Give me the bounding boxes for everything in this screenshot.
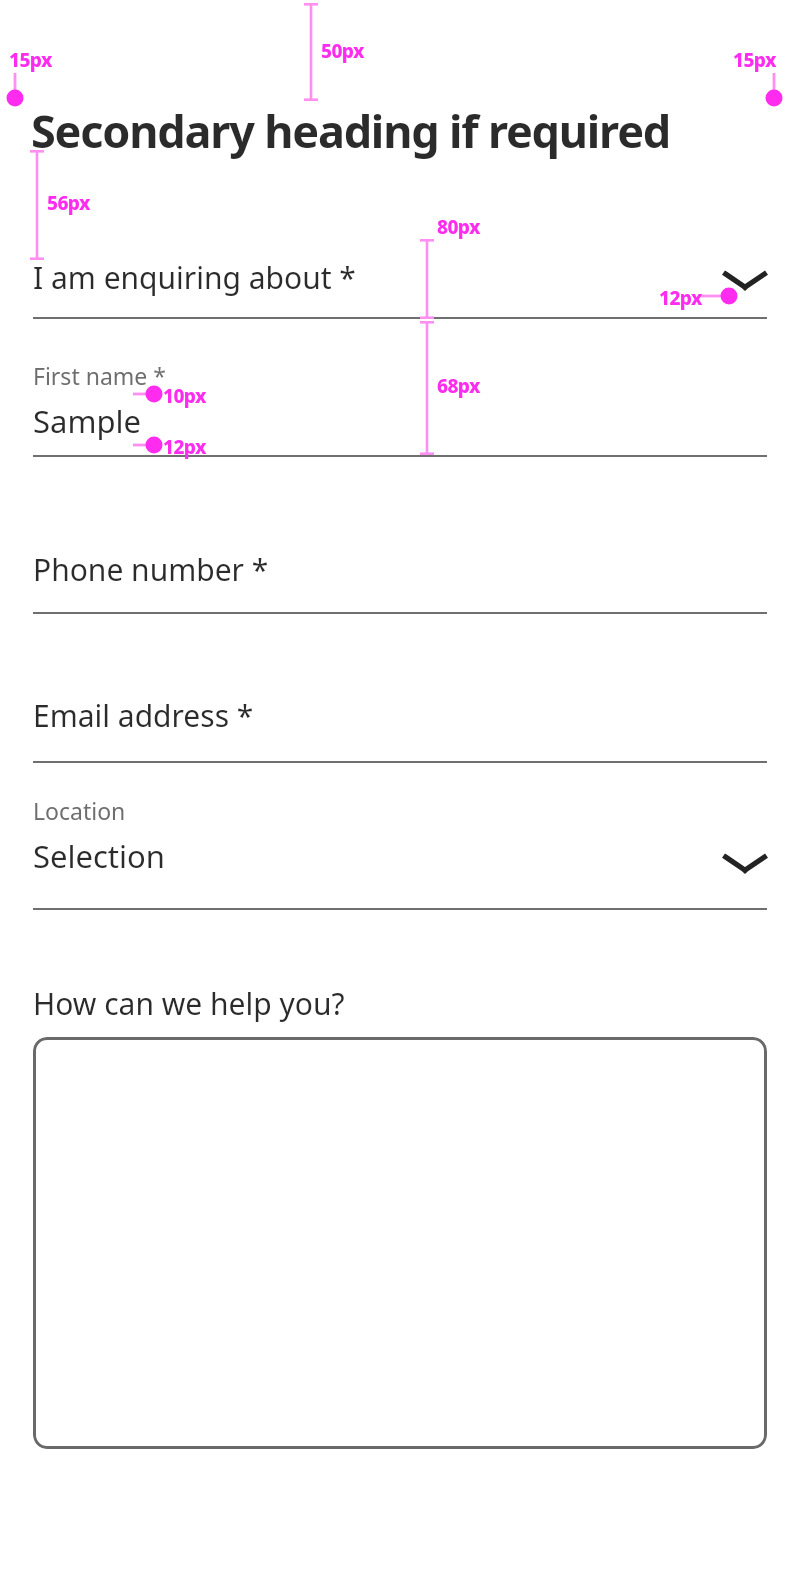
staticText: How can we help you? [33, 983, 345, 1024]
staticText: 12px [163, 434, 206, 460]
staticText: Email address * [33, 695, 254, 736]
staticText: 15px [9, 47, 52, 73]
staticText: 12px [659, 285, 702, 311]
button[interactable]: Open location dropdown [723, 848, 767, 878]
button[interactable]: Open enquiry type dropdown [723, 265, 767, 295]
staticText: 80px [437, 214, 480, 240]
staticText: Secondary heading if required [31, 100, 671, 161]
button[interactable]: First name * [33, 360, 767, 452]
staticText: 68px [437, 373, 480, 399]
staticText: Selection [33, 835, 165, 877]
staticText: 56px [47, 190, 90, 216]
staticText: 15px [733, 47, 776, 73]
button[interactable]: I am enquiring about * [33, 248, 767, 320]
button[interactable] [33, 1037, 767, 1449]
staticText: Sample [33, 400, 141, 442]
button[interactable]: Location [33, 795, 767, 905]
staticText: Location [33, 795, 126, 826]
button[interactable]: Email address * [33, 686, 767, 756]
staticText: 50px [321, 38, 364, 64]
staticText: I am enquiring about * [33, 257, 356, 298]
button[interactable]: Phone number * [33, 540, 767, 610]
staticText: 10px [163, 383, 206, 409]
staticText: Phone number * [33, 549, 269, 590]
staticText: First name * [33, 360, 166, 391]
